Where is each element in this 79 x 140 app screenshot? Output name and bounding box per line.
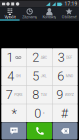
button[interactable]: # (52, 104, 77, 122)
staticText: Záznamy (22, 15, 37, 19)
button[interactable]: 2 (27, 48, 52, 67)
staticText: # (61, 106, 68, 121)
staticText: 6 (57, 69, 64, 83)
button[interactable]: 0 (27, 104, 52, 122)
staticText: DEF (66, 55, 72, 60)
button[interactable]: 3 (52, 48, 77, 67)
staticText: Kontakty (42, 15, 56, 19)
button[interactable]: 7 (1, 86, 26, 104)
button[interactable]: Call (27, 122, 52, 140)
button[interactable]: 5 (27, 67, 52, 85)
button[interactable]: 1 (1, 48, 26, 67)
button[interactable]: Kontakty (39, 7, 59, 21)
staticText: 5 (32, 69, 39, 83)
button[interactable]: Oblíbené (59, 7, 79, 21)
button[interactable]: 8 (27, 86, 52, 104)
staticText: 0 (34, 106, 41, 121)
button[interactable]: Vytočit (0, 7, 20, 21)
staticText: 9 (56, 87, 63, 102)
staticText: * (11, 106, 16, 121)
staticText: 17:19 (64, 1, 77, 7)
staticText: JKL (41, 74, 47, 78)
button[interactable]: 4 (1, 67, 26, 85)
staticText: PQRS (14, 93, 22, 97)
staticText: Oblíbené (62, 15, 77, 19)
button[interactable]: * (1, 104, 26, 122)
staticText: TUV (41, 93, 47, 97)
button[interactable]: Záznamy (20, 7, 40, 21)
staticText: 7 (6, 87, 13, 102)
staticText: 3 (58, 50, 65, 65)
staticText: 2 (32, 50, 39, 65)
staticText: + (43, 111, 45, 115)
staticText: 8 (32, 87, 39, 102)
staticText: WXYZ (65, 93, 74, 97)
staticText: ABC (41, 55, 47, 60)
button[interactable]: Backspace (52, 122, 77, 140)
button[interactable]: 6 (52, 67, 77, 85)
staticText: 4 (7, 69, 14, 83)
staticText: MNO (66, 74, 73, 78)
staticText: GHI (16, 74, 21, 78)
staticText: Vytočit (4, 15, 15, 19)
button[interactable]: 9 (52, 86, 77, 104)
button[interactable]: Message (1, 122, 26, 140)
staticText: 1 (7, 50, 14, 65)
